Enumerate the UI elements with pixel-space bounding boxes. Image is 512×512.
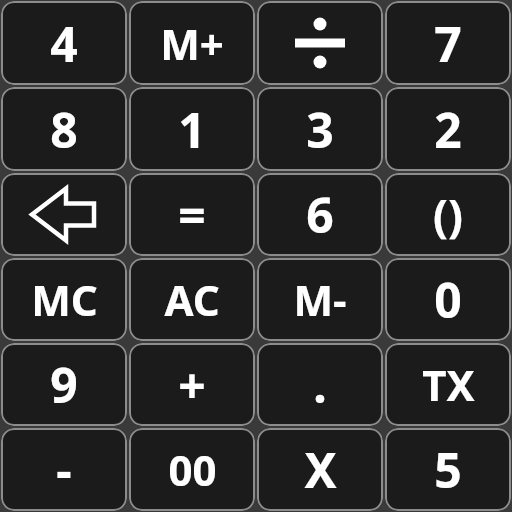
staticText: =	[178, 182, 206, 247]
staticText: 8	[50, 97, 78, 162]
staticText: 0	[434, 267, 462, 332]
button[interactable]: Backspace	[1, 173, 127, 256]
button[interactable]: 8	[1, 87, 127, 171]
staticText: 9	[50, 352, 78, 417]
button[interactable]: MC	[1, 258, 127, 341]
button[interactable]: X	[257, 428, 383, 511]
button[interactable]: .	[257, 343, 383, 426]
staticText: +	[178, 352, 206, 417]
button[interactable]: 1	[129, 87, 255, 171]
button[interactable]: 4	[1, 1, 127, 85]
staticText: 3	[306, 97, 334, 162]
staticText: X	[304, 437, 337, 502]
staticText: M+	[160, 15, 224, 72]
button[interactable]: 2	[385, 87, 511, 171]
staticText: 1	[178, 97, 206, 162]
button[interactable]: 6	[257, 173, 383, 256]
button[interactable]: 0	[385, 258, 511, 341]
button[interactable]: 3	[257, 87, 383, 171]
button[interactable]: -	[1, 428, 127, 511]
button[interactable]: 9	[1, 343, 127, 426]
button[interactable]: =	[129, 173, 255, 256]
staticText: .	[313, 352, 327, 417]
staticText: 00	[168, 441, 217, 498]
staticText: AC	[164, 271, 220, 328]
staticText: 7	[434, 11, 462, 76]
staticText: ()	[433, 185, 463, 245]
staticText: 2	[434, 97, 462, 162]
button[interactable]: M+	[129, 1, 255, 85]
staticText: 4	[50, 11, 78, 76]
button[interactable]: 00	[129, 428, 255, 511]
staticText: 6	[306, 182, 334, 247]
button[interactable]: ()	[385, 173, 511, 256]
button[interactable]: 5	[385, 428, 511, 511]
button[interactable]: AC	[129, 258, 255, 341]
button[interactable]: M-	[257, 258, 383, 341]
button[interactable]: TX	[385, 343, 511, 426]
staticText: 5	[434, 437, 462, 502]
button[interactable]: Divide	[257, 1, 383, 85]
staticText: TX	[422, 356, 475, 413]
button[interactable]: +	[129, 343, 255, 426]
button[interactable]: 7	[385, 1, 511, 85]
staticText: M-	[293, 271, 347, 328]
staticText: -	[56, 437, 72, 502]
staticText: MC	[31, 271, 98, 328]
